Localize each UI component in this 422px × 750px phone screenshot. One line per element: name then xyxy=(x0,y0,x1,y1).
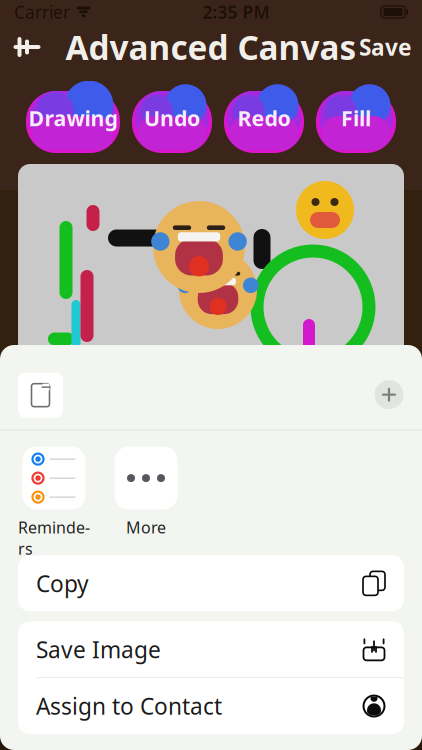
button[interactable]: Copy xyxy=(18,555,404,611)
button[interactable]: Reminders xyxy=(18,447,90,559)
button[interactable]: Undo xyxy=(132,81,212,155)
button[interactable]: Save Image xyxy=(18,621,404,677)
button[interactable]: Redo xyxy=(224,81,304,155)
button[interactable]: Close xyxy=(367,373,411,417)
staticText: Redo xyxy=(237,104,290,132)
button[interactable]: Assign to Contact xyxy=(18,678,404,734)
staticText: Save xyxy=(359,32,412,62)
button[interactable]: More xyxy=(110,447,182,538)
staticText: Reminders xyxy=(18,517,90,559)
staticText: Assign to Contact xyxy=(36,691,222,721)
staticText: Fill xyxy=(341,104,371,132)
button[interactable]: Fill xyxy=(316,81,396,155)
staticText: Undo xyxy=(144,104,200,132)
staticText: More xyxy=(126,517,166,538)
staticText: Copy xyxy=(36,568,89,598)
staticText: Save Image xyxy=(36,634,161,664)
button[interactable]: Save xyxy=(349,25,422,69)
staticText: Drawing xyxy=(28,104,117,132)
button[interactable]: Back xyxy=(0,25,54,69)
staticText: Carrier xyxy=(14,0,70,23)
staticText: 2:35 PM xyxy=(202,0,269,23)
button[interactable]: Drawing xyxy=(26,81,120,155)
staticText: Advanced Canvas xyxy=(65,25,356,69)
